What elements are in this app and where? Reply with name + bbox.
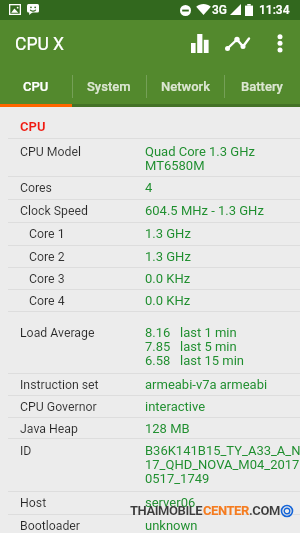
button[interactable]: Java Heap (0, 418, 300, 439)
staticText: server06 (145, 496, 196, 510)
staticText: THAIMOBILE (130, 503, 203, 518)
staticText: 604.5 MHz - 1.3 GHz (145, 204, 264, 218)
staticText: Quad Core 1.3 GHz MT6580M (145, 145, 255, 173)
button[interactable]: Graph (220, 20, 255, 68)
button[interactable]: Bootloader (0, 515, 300, 533)
button[interactable]: Core 1 (0, 223, 300, 246)
staticText: interactive (145, 400, 206, 414)
staticText: 3G (212, 3, 227, 17)
staticText: Core 3 (29, 272, 145, 286)
button[interactable]: Bar chart (185, 20, 216, 68)
button[interactable]: Host (0, 492, 300, 515)
staticText: Bootloader (20, 519, 145, 533)
staticText: 11:34 (259, 3, 290, 17)
staticText: Core 1 (29, 227, 145, 241)
button[interactable]: CPU Model (0, 139, 300, 177)
staticText: 4 (145, 181, 153, 195)
staticText: CPU X (15, 34, 65, 55)
staticText: Core 2 (29, 250, 145, 264)
staticText: ID (20, 444, 145, 458)
staticText: Battery (241, 79, 283, 94)
staticText: CPU Governor (20, 400, 145, 414)
button[interactable]: Core 4 (0, 290, 300, 312)
button[interactable]: Clock Speed (0, 200, 300, 223)
staticText: 1.3 GHz (145, 250, 191, 264)
staticText: unknown (145, 519, 198, 533)
button[interactable]: CPU X (15, 34, 65, 55)
staticText: 0.0 KHz (145, 272, 191, 286)
staticText: Load Average (20, 326, 145, 340)
button[interactable]: Network (146, 68, 224, 104)
staticText: CPU (20, 119, 46, 134)
button[interactable]: Cores (0, 177, 300, 200)
button[interactable]: ID (0, 439, 300, 492)
button[interactable]: Core 3 (0, 268, 300, 290)
button[interactable]: Core 2 (0, 246, 300, 268)
staticText: System (87, 79, 131, 94)
staticText: 8.16 last 1 min 7.85 last 5 min 6.58 las… (145, 326, 245, 368)
button[interactable]: Instruction set (0, 374, 300, 396)
staticText: Host (20, 496, 145, 510)
staticText: armeabi-v7a armeabi (145, 378, 268, 392)
button[interactable]: System (72, 68, 146, 104)
staticText: CPU (23, 79, 49, 94)
button[interactable]: CPU Governor (0, 396, 300, 418)
staticText: Core 4 (29, 294, 145, 308)
staticText: Java Heap (20, 422, 145, 436)
button[interactable]: CPU (0, 68, 72, 104)
staticText: 0.0 KHz (145, 294, 191, 308)
staticText: Cores (20, 181, 145, 195)
staticText: 1.3 GHz (145, 227, 191, 241)
staticText: CENTER (203, 503, 249, 518)
staticText: Network (161, 79, 210, 94)
staticText: Clock Speed (20, 204, 145, 218)
staticText: .COM (249, 503, 280, 518)
staticText: CPU Model (20, 145, 145, 159)
staticText: Instruction set (20, 378, 145, 392)
staticText: B36K141B15_TY_A33_A_N 17_QHD_NOVA_M04_20… (145, 444, 300, 486)
button[interactable]: More options (267, 20, 293, 68)
button[interactable]: Load Average (0, 312, 300, 374)
staticText: 128 MB (145, 422, 190, 436)
button[interactable]: Battery (224, 68, 300, 104)
